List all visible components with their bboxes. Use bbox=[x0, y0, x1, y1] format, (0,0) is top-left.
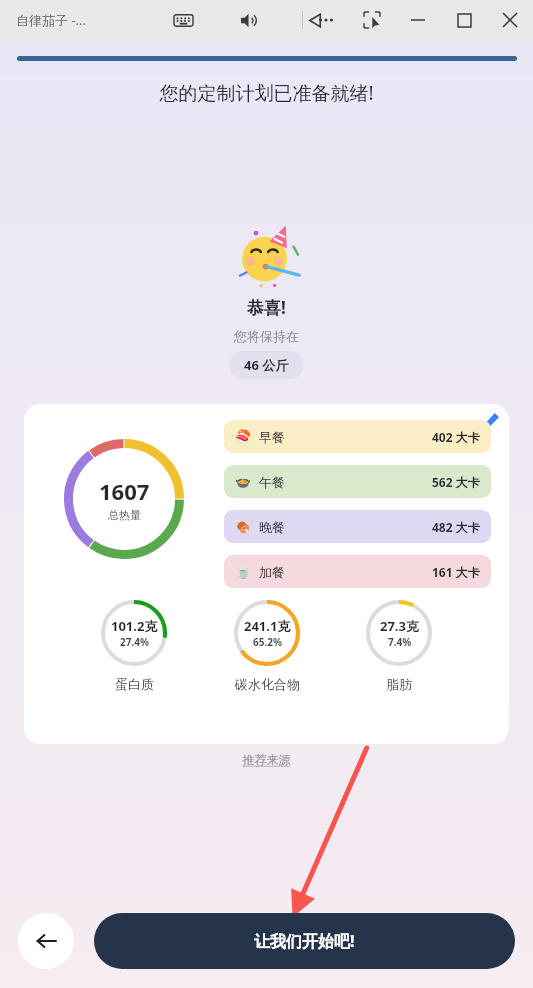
staticText: 早餐 bbox=[259, 429, 285, 445]
staticText: 65.2% bbox=[253, 635, 282, 649]
button[interactable]: 🍲 bbox=[224, 465, 491, 498]
staticText: 午餐 bbox=[259, 474, 285, 490]
button[interactable]: More options bbox=[303, 0, 349, 40]
staticText: 482 大卡 bbox=[432, 519, 480, 535]
button[interactable]: Maximize bbox=[441, 0, 487, 40]
staticText: 27.3克 bbox=[380, 617, 419, 635]
staticText: 自律茄子 -... bbox=[16, 11, 87, 29]
staticText: 碳水化合物 bbox=[235, 676, 300, 692]
staticText: 脂肪 bbox=[386, 676, 412, 692]
staticText: 101.2克 bbox=[111, 617, 158, 635]
button[interactable]: 🍖 bbox=[224, 510, 491, 543]
button[interactable]: Edit bbox=[478, 407, 504, 433]
button[interactable]: 🍵 bbox=[224, 555, 491, 588]
staticText: 总热量 bbox=[108, 508, 141, 522]
button[interactable]: Volume bbox=[226, 0, 272, 40]
staticText: 46 公斤 bbox=[244, 356, 289, 374]
staticText: 蛋白质 bbox=[115, 676, 154, 692]
staticText: 🍖 bbox=[235, 519, 252, 534]
staticText: 27.4% bbox=[120, 635, 149, 649]
staticText: 恭喜! bbox=[247, 296, 286, 319]
button[interactable]: Close bbox=[487, 0, 533, 40]
button[interactable]: 让我们开始吧! bbox=[94, 913, 515, 969]
button[interactable]: 推荐来源 bbox=[0, 752, 533, 767]
staticText: 🍵 bbox=[235, 564, 252, 579]
button[interactable]: 🍣 bbox=[224, 420, 491, 453]
staticText: 🍲 bbox=[235, 474, 252, 489]
staticText: 241.1克 bbox=[244, 617, 291, 635]
staticText: 161 大卡 bbox=[432, 564, 480, 580]
staticText: 402 大卡 bbox=[432, 429, 480, 445]
staticText: 562 大卡 bbox=[432, 474, 480, 490]
staticText: 7.4% bbox=[388, 635, 412, 649]
button[interactable]: Screenshot bbox=[349, 0, 395, 40]
button[interactable]: Back bbox=[18, 913, 74, 969]
staticText: 您的定制计划已准备就绪! bbox=[0, 80, 533, 106]
staticText: 🍣 bbox=[235, 429, 252, 444]
staticText: 1607 bbox=[99, 476, 150, 506]
staticText: 晚餐 bbox=[259, 519, 285, 535]
button[interactable]: Back bbox=[292, 0, 338, 40]
staticText: 您将保持在 bbox=[234, 328, 299, 344]
staticText: 加餐 bbox=[259, 564, 285, 580]
staticText: 让我们开始吧! bbox=[254, 930, 355, 952]
button[interactable]: Minimize bbox=[395, 0, 441, 40]
button[interactable]: Keyboard bbox=[160, 0, 206, 40]
